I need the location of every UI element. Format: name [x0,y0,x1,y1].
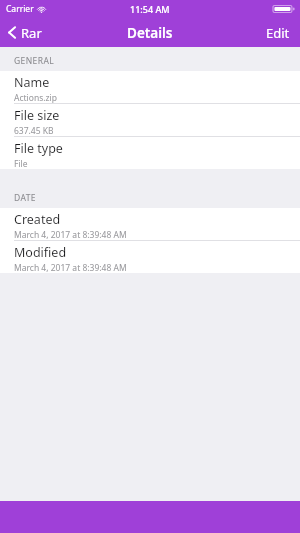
staticText: March 4, 2017 at 8:39:48 AM [14,229,127,240]
staticText: 11:54 AM [130,3,170,15]
staticText: GENERAL [14,55,55,67]
staticText: File [14,158,28,169]
staticText: Edit [266,24,290,42]
staticText: Rar [21,24,42,42]
staticText: Name [14,74,50,91]
button[interactable]: File type [0,137,300,169]
staticText: March 4, 2017 at 8:39:48 AM [14,262,127,273]
button[interactable]: Created [0,208,300,241]
staticText: DATE [14,192,36,204]
staticText: Carrier [6,3,34,15]
button[interactable]: Edit [256,18,300,47]
button[interactable]: Name [0,71,300,104]
staticText: Details [127,24,173,42]
staticText: Actions.zip [14,92,57,103]
button[interactable]: Rar [0,18,50,47]
button[interactable]: File size [0,104,300,137]
staticText: File size [14,107,60,124]
staticText: 637.45 KB [14,125,54,136]
staticText: File type [14,140,63,157]
button[interactable]: Modified [0,241,300,273]
staticText: Modified [14,244,67,261]
staticText: Created [14,211,61,228]
